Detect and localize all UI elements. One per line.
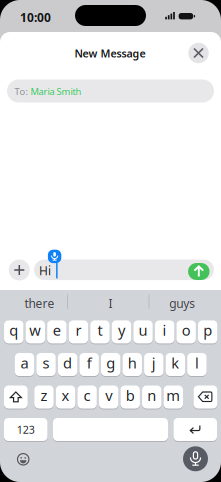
staticText: x [61,385,69,405]
button[interactable]: t [90,320,110,344]
button[interactable]: m [164,385,183,409]
button[interactable]: o [176,320,196,344]
button[interactable]: v [99,385,118,409]
button[interactable]: n [142,385,161,409]
button[interactable]: To: [7,79,214,102]
staticText: Maria Smith [30,85,81,98]
staticText: 10:00 [20,9,51,25]
button[interactable]: e [47,320,67,344]
staticText: h [128,353,137,372]
button[interactable]: b [120,385,140,409]
button[interactable]: Message field [34,260,214,280]
button[interactable]: c [77,385,97,409]
staticText: c [84,385,91,405]
button[interactable]: a [15,352,34,376]
button[interactable]: l [187,352,207,376]
button[interactable]: Dictation [48,250,61,263]
staticText: To: [14,85,28,98]
staticText: t [97,320,102,340]
staticText: e [53,320,61,340]
staticText: y [118,320,125,340]
staticText: d [63,353,72,372]
button[interactable]: z [34,385,54,409]
staticText: 123 [17,422,35,437]
button[interactable]: Send [188,263,210,280]
button[interactable]: Delete [194,385,217,409]
button[interactable]: I [72,294,150,313]
staticText: New Message [74,46,145,60]
button[interactable]: h [122,352,142,376]
staticText: n [147,385,156,405]
button[interactable]: Apps [9,259,30,280]
staticText: k [171,353,179,372]
button[interactable]: u [133,320,153,344]
button[interactable]: g [101,352,120,376]
staticText: a [20,353,28,372]
staticText: b [126,385,135,405]
button[interactable]: x [56,385,75,409]
button[interactable]: i [155,320,174,344]
button[interactable]: y [112,320,131,344]
button[interactable]: Return [173,417,217,441]
button[interactable]: q [4,320,23,344]
button[interactable]: Numbers [4,417,47,441]
button[interactable]: r [69,320,88,344]
staticText: s [42,353,49,372]
staticText: I [109,295,113,311]
staticText: g [106,353,115,372]
staticText: j [152,353,156,372]
staticText: l [195,353,199,372]
staticText: there [24,295,54,311]
staticText: w [29,320,41,340]
staticText: i [163,320,167,340]
button[interactable]: d [58,352,77,376]
button[interactable]: k [166,352,185,376]
staticText: m [166,385,180,405]
button[interactable]: w [26,320,45,344]
button[interactable]: s [36,352,56,376]
button[interactable]: Close [188,43,209,63]
button[interactable]: j [144,352,163,376]
staticText: f [87,353,92,372]
button[interactable]: p [198,320,217,344]
staticText: q [9,320,18,340]
staticText: Hi [39,263,51,278]
staticText: v [105,385,112,405]
button[interactable]: Emoji [15,451,31,467]
staticText: o [182,320,191,340]
staticText: z [40,385,47,405]
staticText: u [139,320,148,340]
staticText: r [75,320,81,340]
button[interactable]: f [79,352,99,376]
button[interactable]: Dictate [183,446,208,471]
button[interactable]: there [6,294,72,313]
button[interactable]: Shift [4,385,28,409]
staticText: p [203,320,212,340]
button[interactable]: Space [53,417,168,441]
button[interactable]: guys [149,294,215,313]
staticText: guys [169,295,195,311]
